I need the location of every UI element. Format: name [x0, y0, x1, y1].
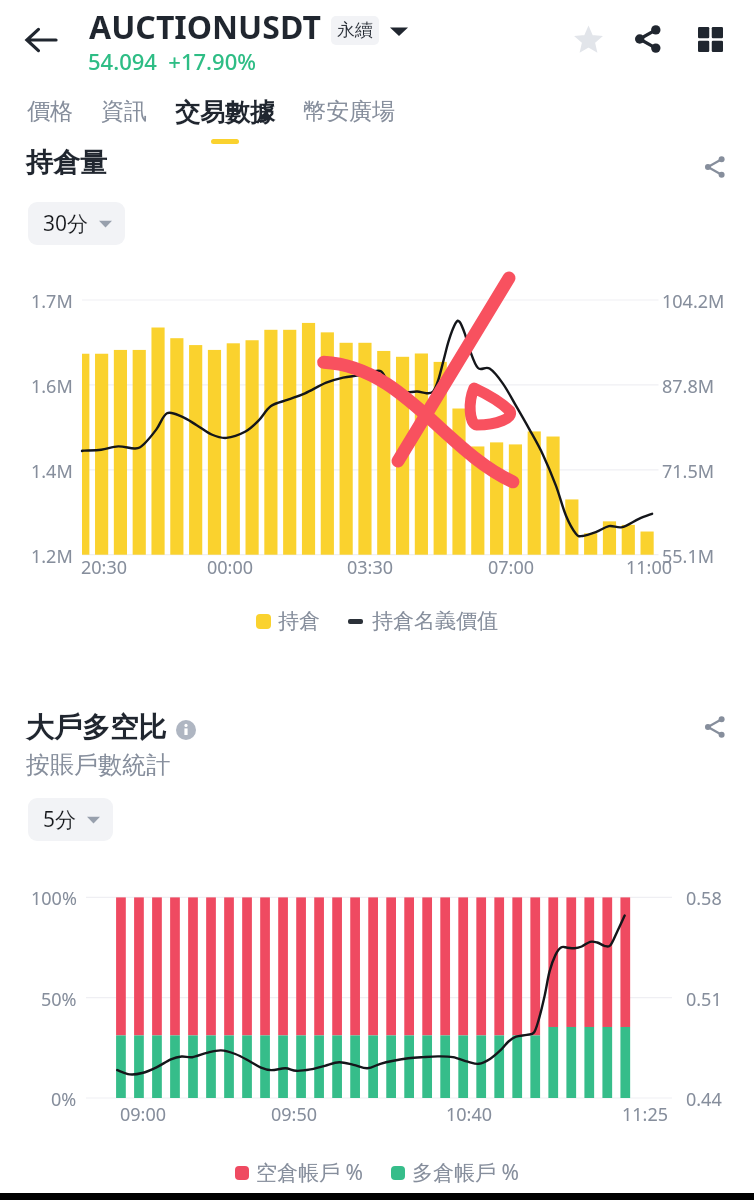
button[interactable]: 交易數據 [175, 97, 303, 144]
staticText: 資訊 [101, 97, 147, 126]
staticText: AUCTIONUSDT [89, 5, 321, 49]
staticText: 交易數據 [175, 97, 275, 128]
staticText: 07:00 [488, 555, 535, 580]
staticText: 03:30 [347, 555, 394, 580]
staticText: 30分 [43, 209, 89, 238]
staticText: 0.58 [686, 886, 722, 911]
staticText: 5分 [43, 805, 77, 834]
staticText: 20:30 [81, 555, 128, 580]
staticText: 1.6M [31, 374, 73, 399]
staticText: 54.094 +17.90% [88, 46, 256, 76]
staticText: 持倉名義價值 [372, 608, 498, 634]
button[interactable]: Share long short ratio [698, 710, 732, 744]
button[interactable]: Back [14, 13, 68, 67]
staticText: 09:50 [271, 1102, 318, 1127]
staticText: 1.4M [31, 459, 73, 484]
staticText: 11:25 [622, 1102, 669, 1127]
button[interactable]: 幣安廣場 [303, 97, 395, 144]
staticText: 10:40 [446, 1102, 493, 1127]
staticText: 多倉帳戶 % [412, 1158, 519, 1187]
staticText: 0% [51, 1087, 77, 1112]
staticText: 09:00 [120, 1102, 167, 1127]
staticText: 0.44 [686, 1087, 722, 1112]
staticText: 1.7M [31, 289, 73, 314]
staticText: 1.2M [31, 544, 73, 569]
staticText: 00:00 [207, 555, 254, 580]
button[interactable]: 資訊 [101, 97, 175, 144]
staticText: 空倉帳戶 % [256, 1158, 363, 1187]
staticText: 87.8M [662, 374, 715, 399]
staticText: 104.2M [662, 289, 725, 314]
button[interactable]: Favorite [563, 14, 613, 64]
staticText: 55.1M [662, 544, 715, 569]
button[interactable]: 5分 [28, 798, 113, 841]
staticText: 100% [31, 886, 77, 911]
staticText: 大戶多空比 [26, 710, 166, 745]
staticText: 價格 [27, 97, 73, 126]
staticText: 幣安廣場 [303, 97, 395, 126]
staticText: 持倉 [278, 608, 320, 634]
staticText: 71.5M [662, 459, 715, 484]
button[interactable]: Share open interest [698, 150, 732, 184]
button[interactable]: 30分 [28, 202, 125, 245]
staticText: 持倉量 [26, 146, 107, 180]
staticText: 0.51 [686, 987, 722, 1012]
button[interactable]: 價格 [27, 97, 101, 144]
button[interactable]: Share [623, 14, 673, 64]
staticText: 永續 [337, 19, 373, 42]
staticText: 按賬戶數統計 [26, 750, 170, 780]
staticText: 50% [41, 987, 77, 1012]
button[interactable]: Grid menu [685, 14, 735, 64]
staticText: 11:00 [626, 555, 673, 580]
